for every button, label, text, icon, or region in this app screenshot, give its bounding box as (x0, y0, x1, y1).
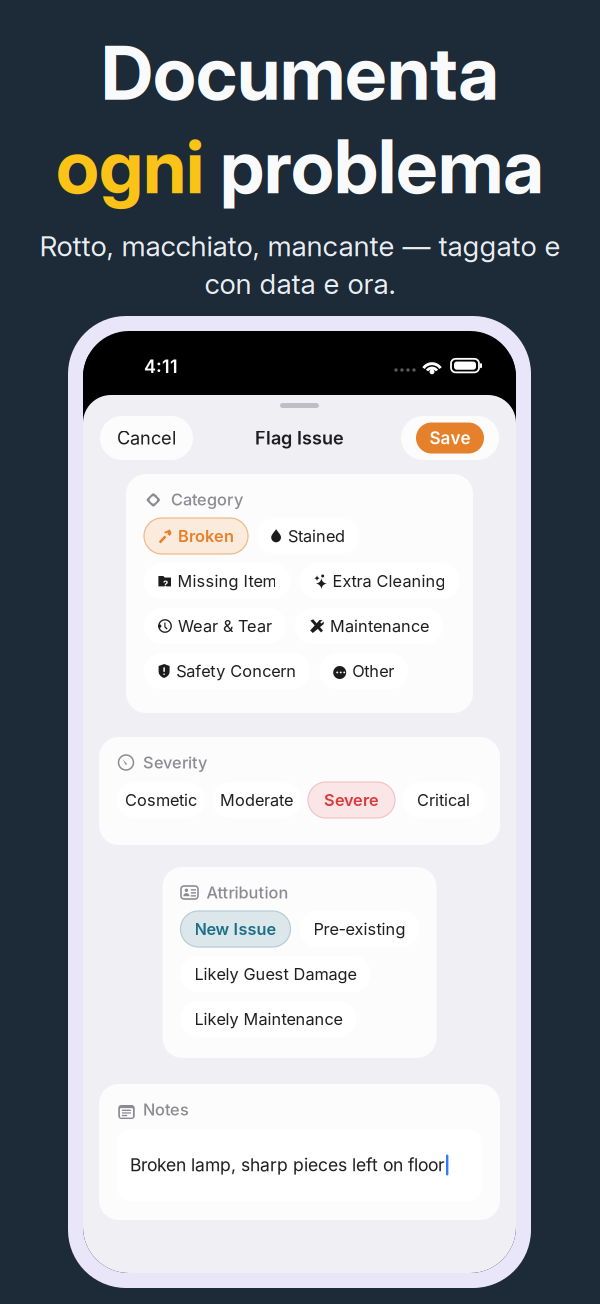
button[interactable]: Cancel (100, 416, 193, 460)
staticText: Save (429, 428, 470, 448)
staticText: Rotto, macchiato, mancante — taggato e (39, 229, 560, 263)
button[interactable]: Extra Cleaning (299, 563, 459, 599)
staticText: Broken (178, 526, 234, 546)
staticText: Cancel (117, 427, 176, 449)
staticText: Notes (143, 1100, 189, 1119)
button[interactable]: Stained (257, 518, 359, 554)
staticText: Documenta (101, 28, 499, 117)
staticText: Attribution (206, 883, 288, 902)
staticText: 4:11 (144, 356, 178, 378)
staticText: problema (204, 121, 544, 211)
staticText: Stained (288, 526, 345, 546)
staticText: Severity (143, 753, 207, 772)
staticText: Pre-existing (313, 919, 405, 939)
staticText: Severe (324, 790, 379, 810)
staticText: Cosmetic (125, 790, 197, 810)
button[interactable]: Cosmetic (117, 782, 205, 818)
button[interactable]: Likely Guest Damage (180, 956, 370, 992)
staticText: Safety Concern (176, 661, 296, 681)
staticText: Wear & Tear (178, 616, 272, 636)
button[interactable]: Broken (144, 518, 248, 554)
staticText: Likely Guest Damage (194, 964, 356, 984)
button[interactable]: Likely Maintenance (180, 1001, 356, 1037)
button[interactable]: Wear & Tear (144, 608, 286, 644)
button[interactable]: New Issue (180, 911, 290, 947)
staticText: Broken lamp, sharp pieces left on floor (130, 1154, 445, 1175)
button[interactable]: Critical (402, 782, 485, 818)
button[interactable]: Pre-existing (299, 911, 419, 947)
staticText: Critical (417, 790, 470, 810)
button[interactable]: Moderate (212, 782, 301, 818)
staticText: ogni (56, 121, 204, 211)
staticText: Missing Item (177, 571, 276, 591)
button[interactable]: Maintenance (295, 608, 443, 644)
button[interactable]: Severe (308, 782, 395, 818)
staticText: Moderate (220, 790, 293, 810)
staticText: ? (163, 578, 168, 590)
staticText: New Issue (194, 919, 276, 939)
staticText: Maintenance (330, 616, 429, 636)
staticText: con data e ora. (204, 267, 395, 301)
button[interactable]: ? (144, 563, 290, 599)
staticText: Flag Issue (255, 427, 344, 449)
staticText: Other (352, 661, 394, 681)
staticText: Extra Cleaning (332, 571, 445, 591)
staticText: Category (171, 490, 243, 509)
button[interactable]: Save (401, 416, 499, 460)
button[interactable]: Safety Concern (144, 653, 310, 689)
staticText: Likely Maintenance (194, 1009, 342, 1029)
button[interactable]: Other (319, 653, 408, 689)
